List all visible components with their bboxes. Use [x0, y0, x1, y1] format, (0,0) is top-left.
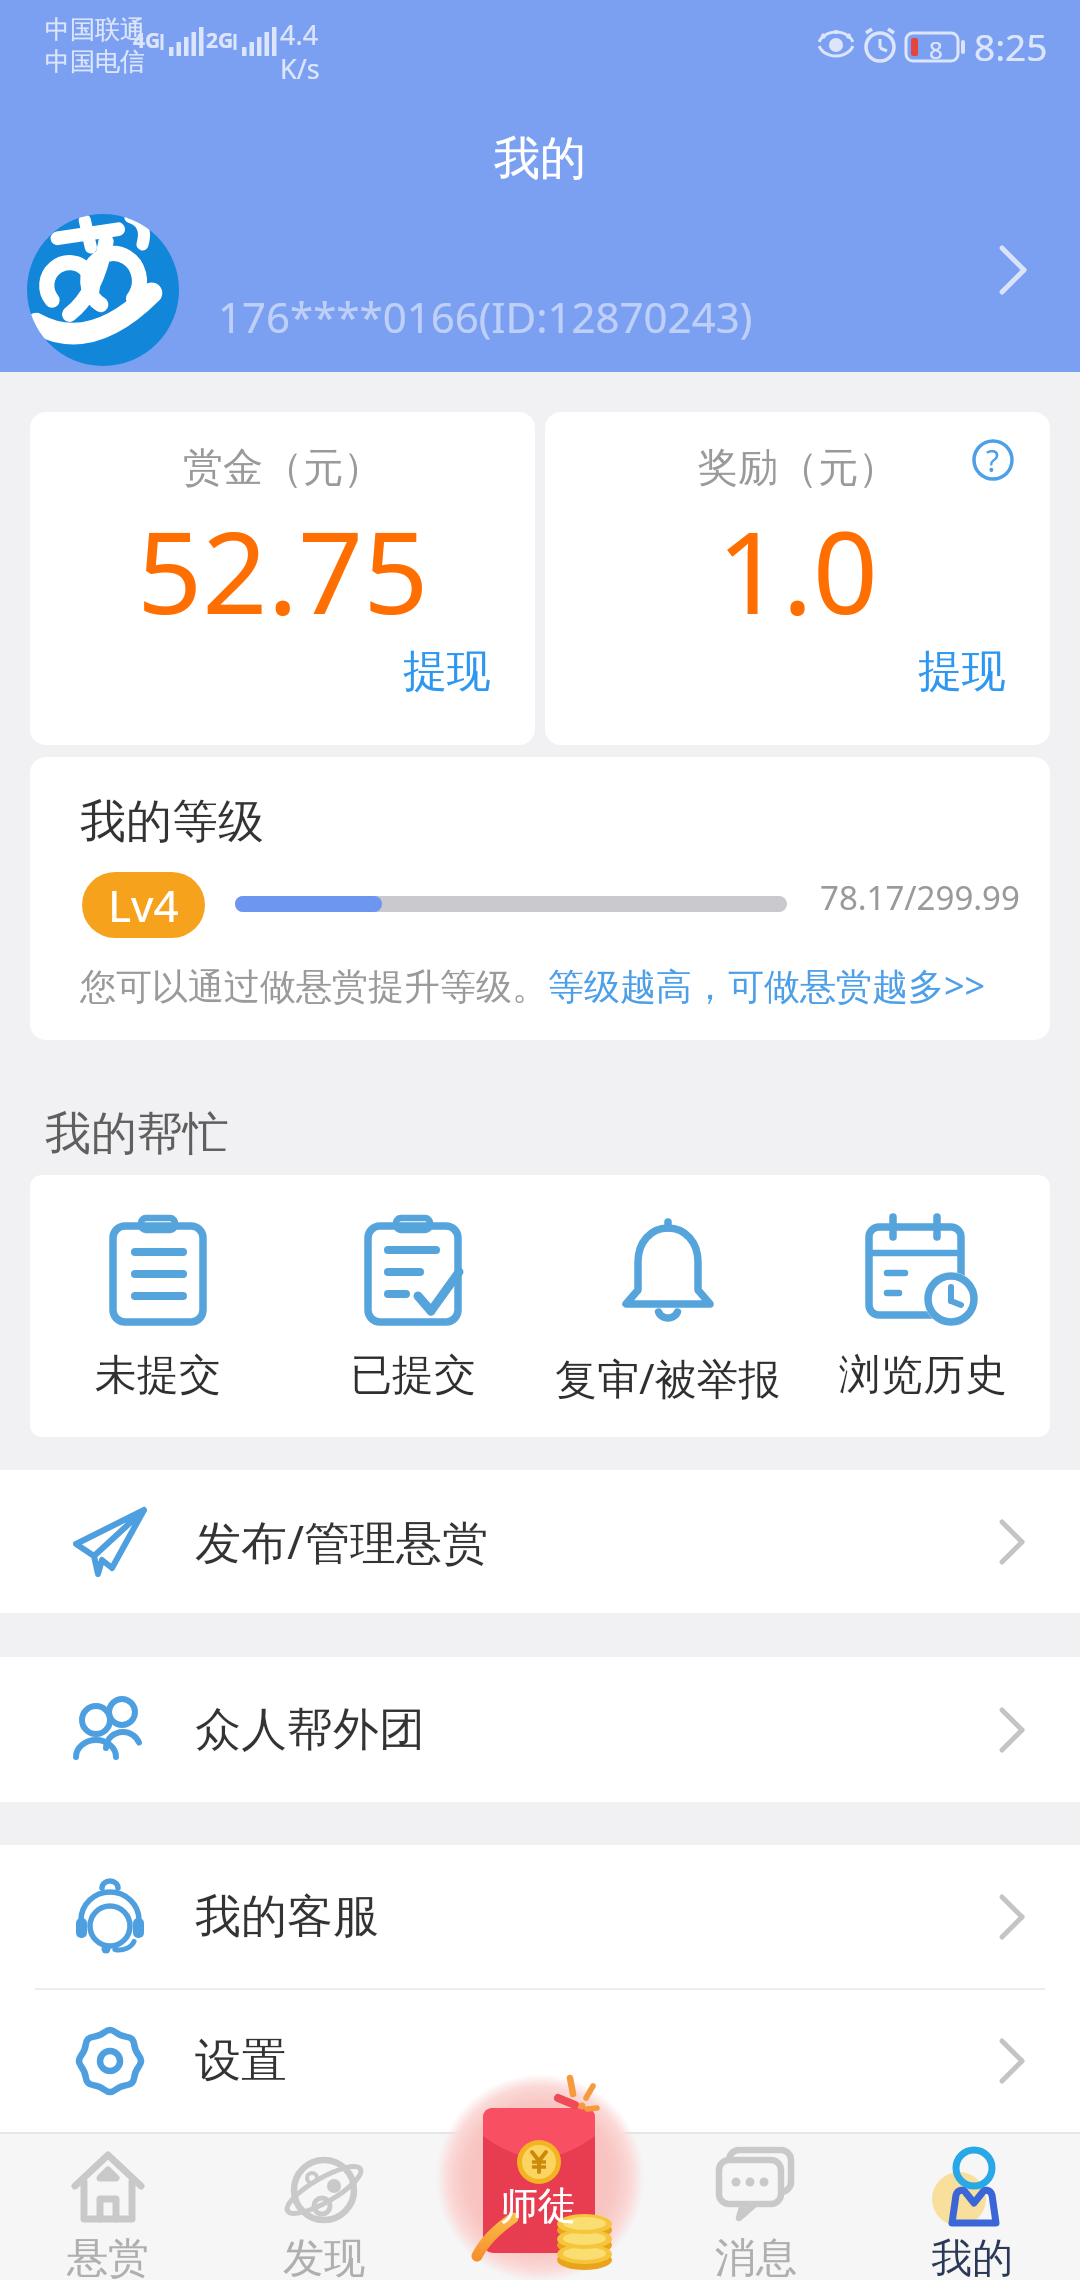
- staticText: K/s: [280, 50, 320, 87]
- button[interactable]: 未提交: [30, 1175, 285, 1437]
- staticText: 1.0: [717, 492, 878, 647]
- staticText: 未提交: [95, 1349, 221, 1402]
- staticText: 复审/被举报: [555, 1349, 781, 1406]
- button[interactable]: 发现: [216, 2132, 432, 2280]
- button[interactable]: 提现: [918, 644, 1006, 699]
- staticText: 我的帮忙: [45, 1105, 229, 1163]
- button[interactable]: 复审/被举报: [540, 1175, 795, 1437]
- staticText: 8: [929, 33, 943, 66]
- staticText: 176****0166(ID:12870243): [218, 288, 753, 345]
- staticText: 浏览历史: [839, 1349, 1007, 1402]
- button[interactable]: 发布/管理悬赏: [0, 1470, 1080, 1613]
- button[interactable]: 消息: [648, 2132, 864, 2280]
- staticText: 已提交: [350, 1349, 476, 1402]
- button[interactable]: 奖励（元）: [545, 412, 1050, 745]
- staticText: 我的: [931, 2233, 1013, 2280]
- button[interactable]: 赏金（元）: [30, 412, 535, 745]
- staticText: 发现: [283, 2233, 365, 2280]
- button[interactable]: 我的: [864, 2132, 1080, 2280]
- staticText: 师徒: [500, 2182, 576, 2230]
- staticText: 悬赏: [67, 2233, 149, 2280]
- staticText: 2G: [206, 26, 234, 55]
- button[interactable]: 师徒: [425, 2060, 655, 2280]
- staticText: 您可以通过做悬赏提升等级。等级越高，可做悬赏越多>>: [80, 961, 986, 1010]
- staticText: 我的客服: [195, 1888, 379, 1946]
- staticText: 赏金（元）: [183, 442, 383, 492]
- button[interactable]: 悬赏: [0, 2132, 216, 2280]
- staticText: 中国电信: [45, 46, 145, 77]
- staticText: 众人帮外团: [195, 1701, 425, 1759]
- staticText: 中国联通: [45, 14, 145, 45]
- staticText: 奖励（元）: [698, 442, 898, 492]
- staticText: 4.4: [280, 16, 319, 53]
- staticText: 消息: [715, 2233, 797, 2280]
- staticText: Lv4: [108, 875, 179, 935]
- staticText: 设置: [195, 2032, 287, 2090]
- staticText: 78.17/299.99: [820, 875, 1020, 920]
- staticText: ?: [986, 440, 1000, 481]
- staticText: 52.75: [137, 492, 429, 647]
- staticText: 4G: [133, 26, 161, 55]
- button[interactable]: 我的客服: [0, 1845, 1080, 1988]
- button[interactable]: [432, 2132, 648, 2280]
- button[interactable]: 已提交: [285, 1175, 540, 1437]
- button[interactable]: 设置: [0, 1990, 1080, 2132]
- button[interactable]: 浏览历史: [795, 1175, 1050, 1437]
- staticText: 发布/管理悬赏: [195, 1510, 489, 1573]
- staticText: 8:25: [974, 21, 1048, 71]
- staticText: 我的等级: [80, 793, 264, 851]
- button[interactable]: ?: [972, 439, 1014, 481]
- button[interactable]: 提现: [403, 644, 491, 699]
- button[interactable]: 众人帮外团: [0, 1657, 1080, 1802]
- button[interactable]: [27, 214, 179, 366]
- staticText: 我的: [494, 130, 586, 188]
